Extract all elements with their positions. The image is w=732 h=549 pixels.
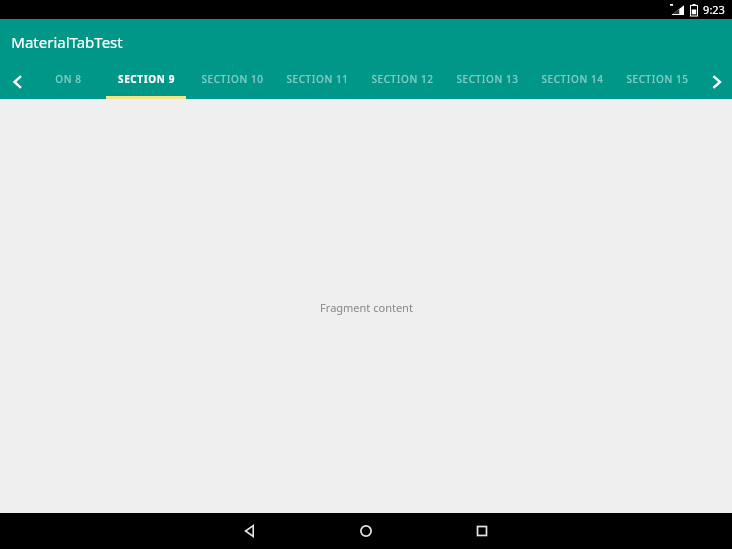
staticText: ON 8 xyxy=(55,72,82,86)
button[interactable]: SECTION 14 xyxy=(530,64,615,99)
button[interactable]: Previous tabs xyxy=(0,64,34,99)
button[interactable]: Home xyxy=(308,513,424,549)
staticText: SECTION 9 xyxy=(118,72,175,86)
staticText: SECTION 11 xyxy=(286,72,349,86)
staticText: Fragment content xyxy=(320,300,413,315)
staticText: SECTION 12 xyxy=(371,72,434,86)
staticText: SECTION 10 xyxy=(201,72,264,86)
staticText: 9:23 xyxy=(703,2,725,17)
staticText: SECTION 13 xyxy=(456,72,519,86)
button[interactable]: ON 8 xyxy=(34,64,103,99)
staticText: SECTION 15 xyxy=(626,72,689,86)
button[interactable]: Next tabs xyxy=(700,64,732,99)
button[interactable]: SECTION 12 xyxy=(360,64,445,99)
staticText: MaterialTabTest xyxy=(11,32,123,52)
button[interactable]: SECTION 9 xyxy=(103,64,189,99)
button[interactable]: Back xyxy=(192,513,308,549)
button[interactable]: SECTION 13 xyxy=(445,64,530,99)
button[interactable]: Recent apps xyxy=(424,513,540,549)
button[interactable]: SECTION 15 xyxy=(615,64,700,99)
staticText: SECTION 14 xyxy=(541,72,604,86)
button[interactable]: SECTION 11 xyxy=(275,64,360,99)
button[interactable]: SECTION 10 xyxy=(189,64,275,99)
